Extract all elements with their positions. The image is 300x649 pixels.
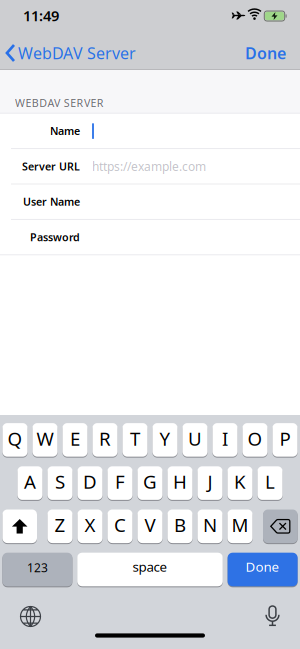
staticText: G [143, 469, 157, 494]
staticText: W [36, 426, 53, 451]
button[interactable]: A [17, 466, 43, 500]
button[interactable]: Password [0, 219, 300, 255]
staticText: L [265, 469, 275, 494]
staticText: V [144, 512, 155, 537]
staticText: Name [50, 124, 80, 138]
button[interactable]: N [197, 509, 223, 544]
staticText: Y [159, 426, 170, 451]
button[interactable]: Done [228, 552, 298, 587]
button[interactable]: User Name [0, 184, 300, 219]
staticText: https://example.com [92, 158, 206, 174]
button[interactable]: J [197, 466, 223, 500]
staticText: J [207, 469, 212, 494]
staticText: Done [245, 42, 286, 64]
staticText: H [173, 469, 187, 494]
button[interactable]: Delete [263, 509, 298, 544]
staticText: P [279, 426, 290, 451]
button[interactable]: Y [152, 423, 178, 457]
button[interactable]: M [227, 509, 253, 544]
button[interactable]: Q [2, 423, 28, 457]
staticText: space [132, 558, 167, 575]
staticText: Done [246, 558, 280, 575]
button[interactable]: Name [0, 113, 300, 149]
staticText: 11:49 [23, 6, 59, 25]
button[interactable]: O [242, 423, 268, 457]
staticText: S [55, 469, 65, 494]
staticText: R [99, 426, 111, 451]
button[interactable]: Next keyboard [20, 606, 40, 626]
staticText: N [203, 512, 217, 537]
button[interactable]: D [77, 466, 103, 500]
button[interactable]: T [122, 423, 148, 457]
button[interactable]: I [212, 423, 238, 457]
staticText: Password [30, 230, 80, 244]
staticText: WEBDAV SERVER [15, 96, 104, 110]
staticText: E [70, 426, 80, 451]
button[interactable]: B [167, 509, 193, 544]
staticText: Server URL [22, 159, 80, 173]
staticText: Q [7, 426, 22, 451]
staticText: F [115, 469, 125, 494]
button[interactable]: G [137, 466, 163, 500]
button[interactable]: K [227, 466, 253, 500]
button[interactable]: E [62, 423, 88, 457]
staticText: D [83, 469, 97, 494]
staticText: O [247, 426, 262, 451]
button[interactable]: H [167, 466, 193, 500]
button[interactable]: R [92, 423, 118, 457]
button[interactable]: Dictate [262, 606, 282, 627]
staticText: M [231, 512, 248, 537]
staticText: B [174, 512, 186, 537]
staticText: K [234, 469, 246, 494]
button[interactable]: Done [245, 36, 286, 70]
button[interactable]: Server URL [0, 149, 300, 184]
button[interactable]: space [77, 552, 223, 587]
staticText: Z [54, 512, 65, 537]
button[interactable]: Z [47, 509, 73, 544]
button[interactable]: L [257, 466, 283, 500]
button[interactable]: X [77, 509, 103, 544]
staticText: I [222, 426, 228, 451]
button[interactable]: Back [6, 36, 136, 70]
staticText: C [114, 512, 126, 537]
staticText: T [130, 426, 140, 451]
button[interactable]: S [47, 466, 73, 500]
button[interactable]: C [107, 509, 133, 544]
staticText: A [24, 469, 36, 494]
button[interactable]: U [182, 423, 208, 457]
staticText: WebDAV Server [18, 42, 136, 64]
staticText: U [188, 426, 202, 451]
button[interactable]: Shift [2, 509, 37, 544]
staticText: 123 [27, 559, 48, 575]
staticText: User Name [23, 195, 80, 209]
button[interactable]: W [32, 423, 58, 457]
button[interactable]: F [107, 466, 133, 500]
button[interactable]: 123 [2, 552, 72, 587]
button[interactable]: P [272, 423, 298, 457]
button[interactable]: V [137, 509, 163, 544]
staticText: X [84, 512, 95, 537]
